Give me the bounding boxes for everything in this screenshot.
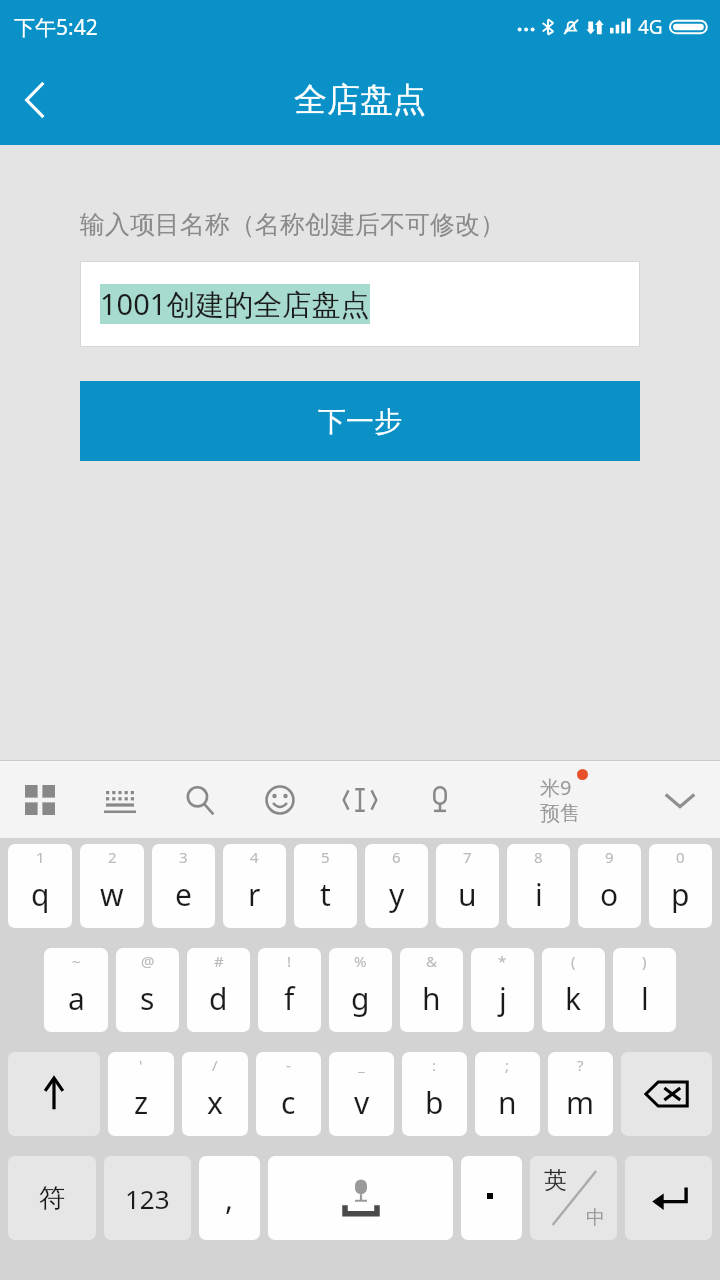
button[interactable]: 1001创建的全店盘点: [80, 261, 640, 347]
button[interactable]: !: [258, 948, 321, 1032]
staticText: i: [535, 874, 543, 915]
staticText: ~: [72, 951, 81, 971]
button[interactable]: /: [182, 1052, 248, 1136]
button[interactable]: ~: [44, 948, 108, 1032]
button[interactable]: 9: [578, 844, 641, 928]
staticText: 全店盘点: [294, 79, 426, 121]
staticText: 7: [463, 847, 472, 867]
staticText: p: [671, 874, 690, 915]
staticText: @: [141, 951, 155, 971]
button[interactable]: 0: [649, 844, 712, 928]
button[interactable]: 123: [104, 1156, 191, 1240]
staticText: !: [287, 951, 292, 971]
button[interactable]: #: [187, 948, 250, 1032]
button[interactable]: *: [471, 948, 534, 1032]
staticText: n: [498, 1082, 517, 1123]
staticText: e: [175, 874, 192, 915]
staticText: c: [281, 1082, 296, 1123]
button[interactable]: Grid: [0, 761, 80, 838]
staticText: b: [425, 1082, 444, 1123]
button[interactable]: Switch language: [530, 1156, 617, 1240]
button[interactable]: Shift: [8, 1052, 100, 1136]
staticText: ?: [577, 1055, 584, 1075]
staticText: 预售: [540, 801, 580, 826]
staticText: /: [212, 1055, 218, 1075]
button[interactable]: 2: [80, 844, 144, 928]
staticText: 英: [544, 1166, 567, 1195]
button[interactable]: Voice input: [400, 761, 480, 838]
button[interactable]: ): [613, 948, 676, 1032]
staticText: k: [565, 978, 582, 1019]
button[interactable]: 8: [507, 844, 570, 928]
staticText: l: [641, 978, 649, 1019]
staticText: z: [134, 1082, 149, 1123]
button[interactable]: Backspace: [621, 1052, 712, 1136]
button[interactable]: 4: [223, 844, 286, 928]
button[interactable]: Back: [0, 65, 70, 135]
staticText: ;: [505, 1055, 510, 1075]
staticText: t: [320, 874, 331, 915]
button[interactable]: Search: [160, 761, 240, 838]
button[interactable]: ;: [475, 1052, 540, 1136]
button[interactable]: Cursor: [320, 761, 400, 838]
staticText: 4G: [638, 14, 663, 40]
button[interactable]: -: [256, 1052, 321, 1136]
button[interactable]: Enter: [625, 1156, 712, 1240]
staticText: ,: [225, 1178, 234, 1219]
button[interactable]: 7: [436, 844, 499, 928]
staticText: #: [214, 951, 224, 971]
staticText: 8: [534, 847, 543, 867]
button[interactable]: Space: [268, 1156, 453, 1240]
staticText: h: [422, 978, 441, 1019]
staticText: f: [284, 978, 295, 1019]
button[interactable]: 3: [152, 844, 215, 928]
staticText: ): [642, 951, 647, 971]
button[interactable]: 符: [8, 1156, 96, 1240]
staticText: (: [571, 951, 576, 971]
button[interactable]: :: [402, 1052, 467, 1136]
button[interactable]: 1: [8, 844, 72, 928]
button[interactable]: ': [108, 1052, 174, 1136]
staticText: 1001创建的全店盘点: [100, 284, 370, 324]
staticText: 123: [125, 1181, 170, 1216]
button[interactable]: Hide keyboard: [640, 761, 720, 838]
staticText: 输入项目名称（名称创建后不可修改）: [80, 209, 505, 240]
staticText: 下一步: [318, 404, 402, 439]
button[interactable]: 5: [294, 844, 357, 928]
staticText: q: [31, 874, 50, 915]
button[interactable]: %: [329, 948, 392, 1032]
staticText: :: [432, 1055, 437, 1075]
staticText: _: [358, 1055, 365, 1075]
button[interactable]: 下一步: [80, 381, 640, 461]
button[interactable]: @: [116, 948, 179, 1032]
button[interactable]: Period: [461, 1156, 522, 1240]
staticText: j: [499, 978, 507, 1019]
staticText: 符: [39, 1182, 65, 1215]
button[interactable]: Keyboard: [80, 761, 160, 838]
staticText: 下午5:42: [14, 13, 98, 42]
staticText: *: [498, 951, 507, 971]
button[interactable]: _: [329, 1052, 394, 1136]
button[interactable]: ?: [548, 1052, 613, 1136]
staticText: x: [207, 1082, 223, 1123]
button[interactable]: ,: [199, 1156, 260, 1240]
staticText: 米9: [540, 774, 572, 801]
staticText: -: [286, 1055, 291, 1075]
staticText: g: [351, 978, 370, 1019]
staticText: &: [426, 951, 437, 971]
staticText: y: [389, 874, 405, 915]
button[interactable]: Emoji: [240, 761, 320, 838]
button[interactable]: 6: [365, 844, 428, 928]
staticText: 3: [179, 847, 188, 867]
staticText: v: [354, 1082, 370, 1123]
button[interactable]: &: [400, 948, 463, 1032]
staticText: 1: [36, 847, 45, 867]
staticText: s: [140, 978, 155, 1019]
button[interactable]: 米9: [480, 761, 640, 838]
button[interactable]: (: [542, 948, 605, 1032]
staticText: d: [209, 978, 228, 1019]
staticText: 中: [586, 1206, 605, 1230]
staticText: 6: [392, 847, 401, 867]
staticText: 5: [321, 847, 330, 867]
staticText: 0: [676, 847, 685, 867]
